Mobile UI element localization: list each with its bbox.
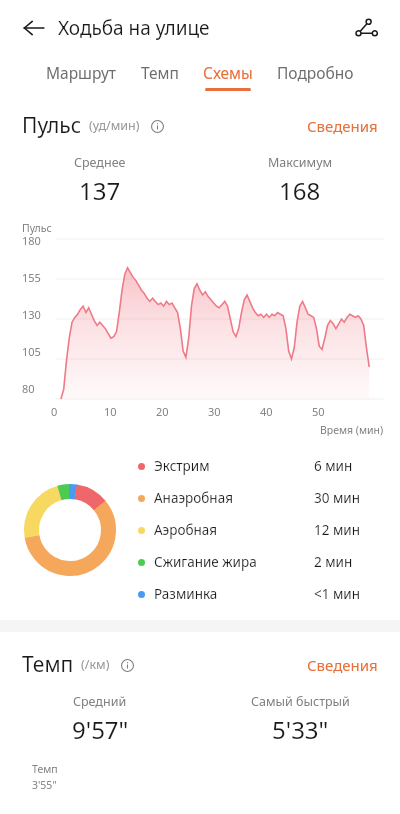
staticText: 180 [22,233,41,245]
staticText: Пульс [22,111,82,140]
staticText: Маршрут [46,62,117,83]
staticText: 0 [51,404,58,419]
button[interactable]: Сведения [305,112,380,140]
button[interactable]: Темп [139,56,181,97]
staticText: 12 мин [314,521,360,539]
button[interactable]: Info [116,654,138,676]
staticText: 9'57" [72,713,129,746]
staticText: 50 [312,404,325,419]
staticText: Сведения [307,116,378,136]
button[interactable]: Разминка [138,578,376,610]
button[interactable]: Аэробная [138,514,376,546]
staticText: 30 [208,404,221,419]
staticText: Экстрим [154,457,210,475]
button[interactable]: Share [346,8,386,48]
staticText: <1 мин [314,585,360,603]
staticText: 155 [22,270,41,282]
staticText: 20 [156,404,169,419]
staticText: Среднее [74,154,126,171]
button[interactable]: Info [146,115,168,137]
button[interactable]: Подробно [275,56,356,97]
staticText: 10 [104,404,117,419]
staticText: Аэробная [154,521,218,539]
button[interactable]: Схемы [201,56,255,97]
staticText: 168 [279,174,321,207]
button[interactable]: Сжигание жира [138,546,376,578]
staticText: Анаэробная [154,489,233,507]
staticText: Темп [32,762,58,776]
staticText: 3'55" [32,778,57,792]
staticText: Разминка [154,585,218,603]
staticText: 5'33" [272,713,329,746]
button[interactable]: Back [14,8,54,48]
staticText: Максимум [268,154,333,171]
staticText: Сжигание жира [154,553,257,571]
button[interactable]: Сведения [305,651,380,679]
staticText: Ходьба на улице [58,15,210,41]
button[interactable]: Маршрут [44,56,119,97]
staticText: 137 [79,174,121,207]
staticText: 105 [22,344,41,356]
staticText: (уд/мин) [89,117,140,134]
button[interactable]: Экстрим [138,450,376,482]
staticText: Время (мин) [320,423,384,436]
staticText: 2 мин [314,553,353,571]
staticText: 130 [22,307,41,319]
staticText: 6 мин [314,457,353,475]
staticText: Подробно [277,62,354,83]
staticText: (/км) [81,656,110,673]
staticText: Сведения [307,655,378,675]
staticText: Самый быстрый [251,693,350,710]
staticText: Темп [141,62,179,83]
staticText: 40 [260,404,273,419]
staticText: 30 мин [314,489,360,507]
staticText: Темп [22,650,74,679]
staticText: Пульс [22,221,52,235]
button[interactable]: Анаэробная [138,482,376,514]
staticText: Средний [73,693,127,710]
staticText: 80 [22,381,35,393]
staticText: Схемы [203,62,253,83]
